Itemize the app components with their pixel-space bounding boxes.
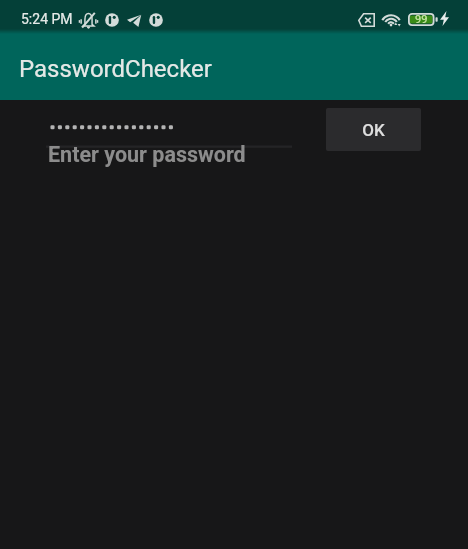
- staticText: OK: [362, 120, 385, 140]
- other: No SIM card: [358, 13, 375, 27]
- staticText: 5:24 PM: [21, 11, 73, 27]
- staticText: PasswordChecker: [19, 55, 212, 83]
- button[interactable]: Password input: [46, 108, 296, 150]
- staticText: Enter your password: [48, 142, 246, 167]
- button[interactable]: OK: [326, 108, 421, 151]
- staticText: 99: [415, 13, 428, 26]
